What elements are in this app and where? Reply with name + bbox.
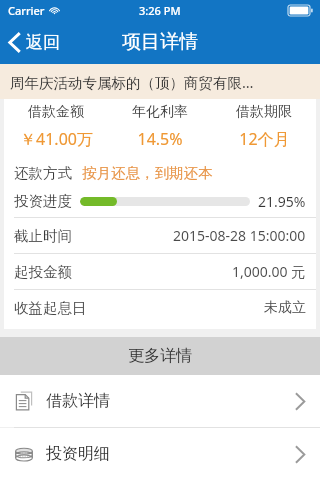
staticText: 按月还息，到期还本 <box>82 164 213 182</box>
staticText: 3:26 PM <box>139 3 181 18</box>
button[interactable]: 返回 <box>0 26 70 59</box>
staticText: 借款详情 <box>46 391 110 411</box>
staticText: 21.95% <box>258 192 306 211</box>
staticText: 投资明细 <box>46 444 110 464</box>
staticText: 未成立 <box>264 299 306 317</box>
staticText: 返回 <box>26 32 60 53</box>
staticText: 借款期限 <box>236 103 292 121</box>
staticText: 12个月 <box>239 128 290 150</box>
staticText: 14.5% <box>137 128 183 150</box>
staticText: 截止时间 <box>14 227 72 245</box>
staticText: 项目详情 <box>122 30 198 54</box>
staticText: 2015-08-28 15:00:00 <box>173 226 306 245</box>
staticText: 还款方式 <box>14 164 72 182</box>
staticText: 更多详情 <box>128 346 192 366</box>
staticText: 1,000.00 元 <box>232 262 306 281</box>
staticText: 年化利率 <box>132 103 188 121</box>
staticText: 借款金额 <box>28 103 84 121</box>
staticText: 投资进度 <box>14 192 72 210</box>
staticText: ￥41.00万 <box>20 128 93 150</box>
staticText: Carrier <box>8 3 45 18</box>
staticText: 收益起息日 <box>14 299 87 317</box>
staticText: 周年庆活动专属标的（顶）商贸有限… <box>10 72 254 92</box>
button[interactable]: 借款详情 <box>0 375 320 427</box>
button[interactable]: 投资明细 <box>0 428 320 480</box>
staticText: 起投金额 <box>14 263 72 281</box>
